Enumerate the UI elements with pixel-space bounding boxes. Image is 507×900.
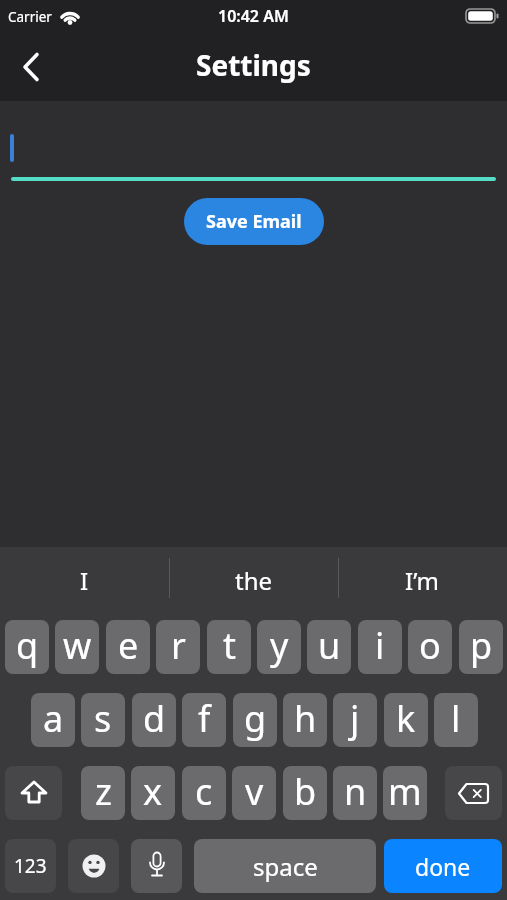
button[interactable]: y [257, 620, 301, 674]
staticText: space [253, 850, 318, 883]
staticText: b [294, 767, 317, 816]
staticText: p [470, 621, 493, 670]
button[interactable] [68, 839, 119, 893]
staticText: h [294, 694, 317, 743]
staticText: n [344, 767, 367, 816]
button[interactable]: x [131, 766, 175, 820]
button[interactable]: l [434, 693, 478, 747]
button[interactable]: k [384, 693, 428, 747]
staticText: d [143, 694, 166, 743]
button[interactable]: Save Email [184, 198, 324, 245]
staticText: a [43, 694, 64, 743]
staticText: x [143, 767, 163, 816]
staticText: Save Email [206, 209, 302, 234]
button[interactable]: s [81, 693, 125, 747]
button[interactable]: m [383, 766, 427, 820]
button[interactable]: u [307, 620, 351, 674]
button[interactable]: n [333, 766, 377, 820]
button[interactable] [131, 839, 182, 893]
staticText: l [451, 694, 461, 743]
button[interactable]: e [106, 620, 150, 674]
staticText: q [16, 621, 39, 670]
button[interactable]: space [194, 839, 376, 893]
button[interactable]: r [156, 620, 200, 674]
staticText: k [396, 694, 416, 743]
staticText: j [350, 694, 360, 743]
staticText: done [415, 851, 471, 882]
button[interactable]: v [232, 766, 276, 820]
staticText: r [171, 621, 186, 670]
staticText: t [223, 621, 236, 670]
staticText: u [318, 621, 341, 670]
staticText: o [419, 621, 441, 670]
staticText: Carrier [8, 8, 52, 26]
staticText: 123 [14, 853, 47, 879]
staticText: I [80, 564, 89, 597]
staticText: e [118, 621, 139, 670]
button[interactable]: w [55, 620, 99, 674]
button[interactable]: b [283, 766, 327, 820]
staticText: s [94, 694, 112, 743]
staticText: v [245, 767, 264, 816]
button[interactable]: 123 [5, 839, 56, 893]
button[interactable]: a [31, 693, 75, 747]
staticText: y [270, 621, 289, 670]
staticText: g [244, 694, 267, 743]
button[interactable]: p [459, 620, 503, 674]
staticText: c [195, 767, 213, 816]
staticText: the [235, 564, 273, 597]
staticText: i [375, 621, 385, 670]
button[interactable] [5, 766, 62, 820]
button[interactable]: the [169, 550, 338, 610]
button[interactable]: g [233, 693, 277, 747]
button[interactable]: d [132, 693, 176, 747]
staticText: f [198, 694, 211, 743]
button[interactable]: done [384, 839, 502, 893]
button[interactable]: I’m [338, 550, 507, 610]
staticText: I’m [405, 564, 440, 597]
button[interactable]: h [283, 693, 327, 747]
button[interactable]: f [182, 693, 226, 747]
staticText: m [388, 767, 422, 816]
button[interactable]: q [5, 620, 49, 674]
button[interactable]: j [333, 693, 377, 747]
button[interactable]: o [408, 620, 452, 674]
staticText: 10:42 AM [218, 5, 289, 27]
button[interactable]: z [81, 766, 125, 820]
button[interactable]: c [182, 766, 226, 820]
staticText: z [95, 767, 112, 816]
staticText: w [63, 621, 92, 670]
button[interactable]: i [358, 620, 402, 674]
button[interactable]: I [0, 550, 169, 610]
button[interactable] [445, 766, 502, 820]
button[interactable] [13, 47, 49, 87]
button[interactable]: t [207, 620, 251, 674]
staticText: Settings [196, 46, 311, 84]
